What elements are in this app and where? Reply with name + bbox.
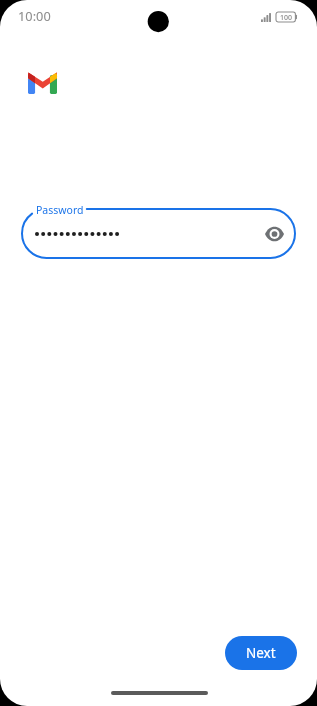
button[interactable]: Password bbox=[21, 208, 296, 259]
staticText: Password bbox=[36, 203, 84, 217]
staticText: 100 bbox=[280, 13, 293, 23]
button[interactable]: Show password bbox=[261, 221, 287, 247]
staticText: 10:00 bbox=[18, 7, 51, 24]
staticText: Next bbox=[246, 644, 276, 662]
button[interactable]: Next bbox=[225, 636, 297, 670]
